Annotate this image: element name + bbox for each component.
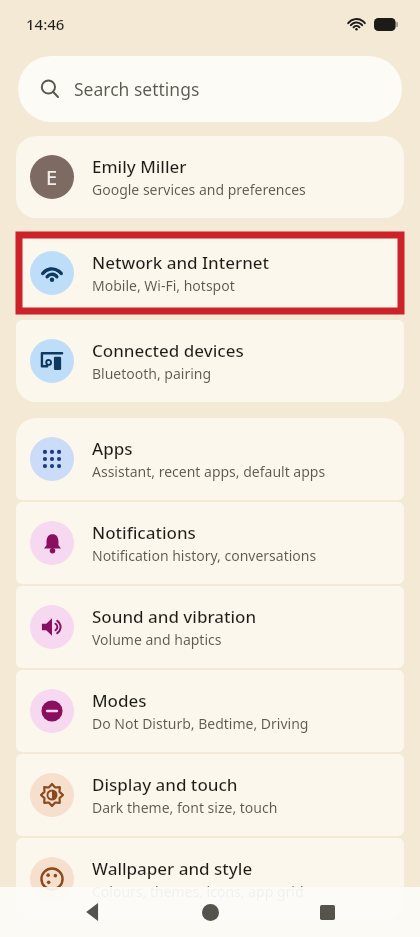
staticText: Volume and haptics [92,630,222,649]
button[interactable]: Connected devices [16,320,404,402]
staticText: Notifications [92,521,196,544]
staticText: Assistant, recent apps, default apps [92,462,326,481]
staticText: Connected devices [92,339,244,362]
staticText: E [46,164,58,191]
staticText: Wallpaper and style [92,857,253,880]
staticText: Network and Internet [92,251,270,274]
staticText: Emily Miller [92,155,187,178]
button[interactable]: E [16,136,404,218]
staticText: Bluetooth, pairing [92,364,212,383]
button[interactable]: Back [69,888,117,936]
staticText: Display and touch [92,773,238,796]
button[interactable]: Recent apps [303,888,351,936]
staticText: Modes [92,689,147,712]
button[interactable]: Modes [16,670,404,752]
staticText: Apps [92,437,133,460]
staticText: Search settings [74,77,200,101]
button[interactable]: Sound and vibration [16,586,404,668]
staticText: 14:46 [26,14,65,34]
staticText: Dark theme, font size, touch [92,798,278,817]
staticText: Do Not Disturb, Bedtime, Driving [92,714,309,733]
button[interactable]: Search settings [18,56,402,122]
staticText: Mobile, Wi-Fi, hotspot [92,276,235,295]
button[interactable]: Wallpaper and style [16,838,404,920]
button[interactable]: Apps [16,418,404,500]
staticText: Colours, themes, icons, app grid [92,882,304,901]
button[interactable]: Home [186,888,234,936]
staticText: Sound and vibration [92,605,257,628]
staticText: Notification history, conversations [92,546,317,565]
button[interactable]: Display and touch [16,754,404,836]
staticText: Google services and preferences [92,180,306,199]
button[interactable]: Network and Internet [16,232,404,314]
button[interactable]: Notifications [16,502,404,584]
